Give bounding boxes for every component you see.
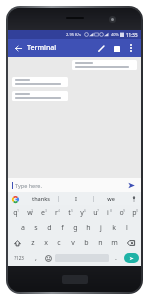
staticText: , <box>35 253 37 263</box>
staticText: a <box>21 223 25 233</box>
staticText: x <box>44 238 48 248</box>
button[interactable]: g <box>69 221 81 235</box>
staticText: n <box>98 238 103 248</box>
button[interactable]: k <box>108 221 120 235</box>
staticText: y <box>80 208 84 218</box>
staticText: 9 <box>123 208 126 213</box>
button[interactable]: a <box>17 221 29 235</box>
staticText: z <box>31 238 35 248</box>
button[interactable]: Enter <box>124 253 139 263</box>
button[interactable]: h <box>82 221 94 235</box>
button[interactable]: we <box>94 192 128 205</box>
button[interactable]: Voice input <box>128 193 139 204</box>
staticText: o <box>119 208 124 218</box>
staticText: Type here. <box>15 182 42 189</box>
button[interactable]: z <box>27 236 39 250</box>
button[interactable]: , <box>30 251 41 265</box>
staticText: Terminal <box>27 43 57 53</box>
button[interactable]: b <box>80 236 93 250</box>
staticText: thanks <box>32 195 50 202</box>
staticText: w <box>27 208 33 218</box>
staticText: 2 <box>31 208 34 213</box>
staticText: 4 <box>58 208 61 213</box>
staticText: l <box>126 223 128 233</box>
button[interactable]: u <box>89 206 101 220</box>
button[interactable]: n <box>94 236 107 250</box>
staticText: 1 <box>17 208 20 213</box>
button[interactable]: I <box>59 192 93 205</box>
button[interactable]: Type here. <box>15 182 125 189</box>
button[interactable]: o <box>115 206 127 220</box>
staticText: g <box>73 223 78 233</box>
button[interactable] <box>12 91 68 101</box>
button[interactable]: m <box>108 236 121 250</box>
button[interactable]: x <box>40 236 52 250</box>
staticText: ?123 <box>14 255 24 261</box>
staticText: 7 <box>97 208 100 213</box>
button[interactable]: d <box>43 221 55 235</box>
button[interactable]: p <box>128 206 140 220</box>
button[interactable]: v <box>66 236 79 250</box>
button[interactable]: r <box>50 206 62 220</box>
button[interactable]: w <box>23 206 36 220</box>
button[interactable]: Send <box>125 179 137 191</box>
staticText: 0 <box>136 208 139 213</box>
staticText: k <box>112 223 116 233</box>
button[interactable] <box>12 77 68 87</box>
staticText: p <box>132 208 137 218</box>
staticText: 6 <box>84 208 87 213</box>
staticText: we <box>107 195 115 202</box>
button[interactable]: f <box>56 221 68 235</box>
button[interactable]: Edit <box>95 42 108 55</box>
staticText: r <box>55 208 58 218</box>
button[interactable]: c <box>53 236 65 250</box>
button[interactable]: t <box>63 206 75 220</box>
staticText: i <box>107 208 109 218</box>
button[interactable]: Back <box>12 42 24 54</box>
staticText: d <box>47 223 52 233</box>
staticText: 3 <box>45 208 48 213</box>
staticText: s <box>34 223 38 233</box>
staticText: m <box>111 238 118 248</box>
button[interactable]: Stop <box>110 42 123 55</box>
button[interactable]: ?123 <box>9 251 29 265</box>
button[interactable]: thanks <box>24 192 58 205</box>
staticText: j <box>100 223 102 233</box>
staticText: v <box>71 238 75 248</box>
staticText: 40% <box>111 32 119 37</box>
button[interactable]: l <box>121 221 133 235</box>
staticText: h <box>86 223 91 233</box>
staticText: t <box>68 208 71 218</box>
staticText: c <box>57 238 61 248</box>
staticText: q <box>13 208 18 218</box>
staticText: 2.95 K/s <box>66 32 82 37</box>
button[interactable] <box>72 60 137 70</box>
staticText: 8 <box>110 208 113 213</box>
button[interactable]: j <box>95 221 107 235</box>
staticText: e <box>41 208 45 218</box>
button[interactable]: s <box>30 221 42 235</box>
staticText: b <box>84 238 89 248</box>
button[interactable]: y <box>76 206 88 220</box>
staticText: 11:35 <box>126 32 138 38</box>
staticText: . <box>115 253 117 263</box>
button[interactable]: q <box>9 206 22 220</box>
staticText: u <box>93 208 98 218</box>
button[interactable]: More options <box>125 42 137 54</box>
button[interactable]: Google search <box>11 195 19 203</box>
button[interactable]: i <box>102 206 114 220</box>
button[interactable]: . <box>110 251 122 265</box>
staticText: I <box>75 195 77 202</box>
button[interactable]: e <box>37 206 49 220</box>
staticText: f <box>61 223 64 233</box>
button[interactable]: Shift <box>9 236 26 250</box>
button[interactable]: Emoji <box>42 251 54 265</box>
button[interactable]: Backspace <box>122 236 140 250</box>
staticText: 5 <box>71 208 74 213</box>
